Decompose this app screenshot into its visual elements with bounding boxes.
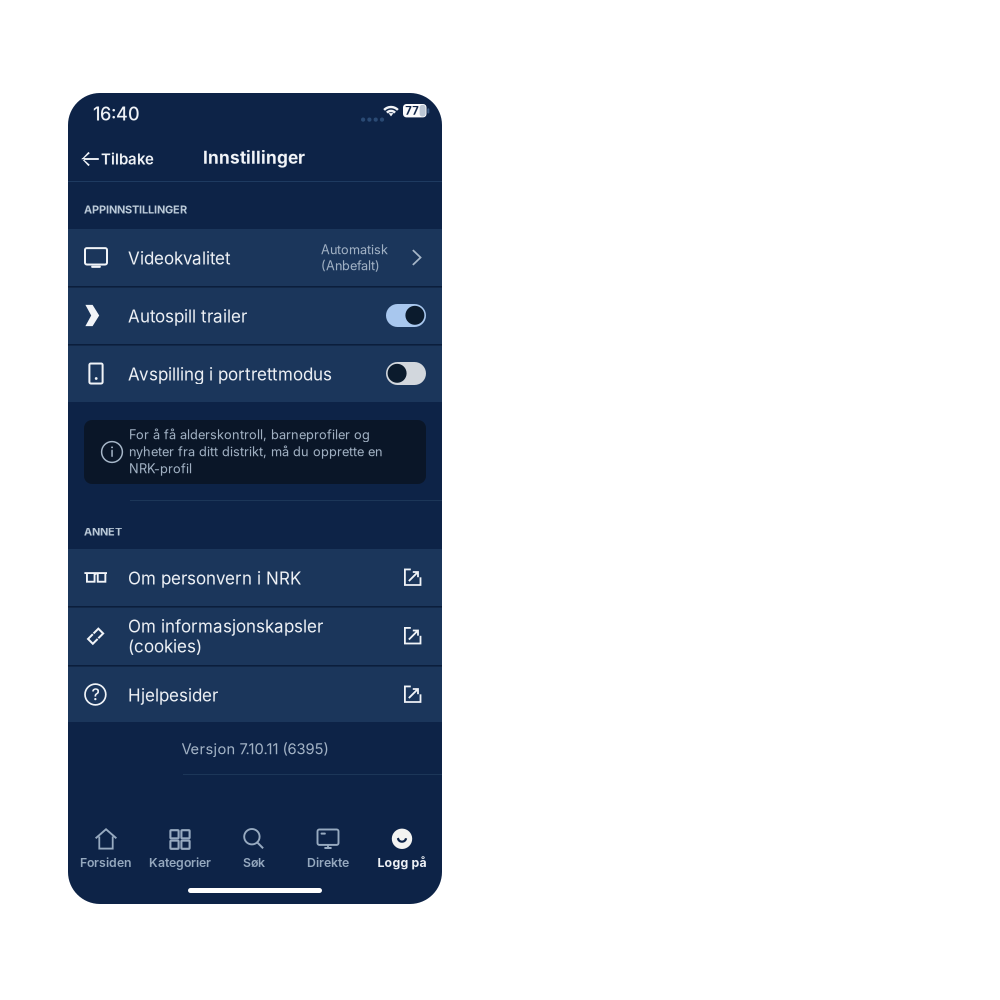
- button[interactable]: Søk: [217, 820, 291, 872]
- staticText: Direkte: [307, 855, 349, 870]
- staticText: 77: [405, 104, 419, 117]
- staticText: ANNET: [84, 525, 122, 538]
- staticText: Om informasjonskapsler: [128, 616, 323, 636]
- staticText: Logg på: [377, 855, 426, 870]
- staticText: Avspilling i portrettmodus: [128, 364, 332, 384]
- staticText: Versjon 7.10.11 (6395): [181, 740, 328, 758]
- staticText: Forsiden: [80, 855, 132, 870]
- staticText: Automatisk: [321, 242, 388, 257]
- staticText: Videokvalitet: [128, 248, 231, 268]
- staticText: ?: [91, 685, 99, 704]
- staticText: 16:40: [93, 103, 140, 125]
- button[interactable]: ?: [68, 666, 442, 723]
- staticText: Innstillinger: [203, 147, 305, 168]
- button[interactable]: Autospill trailer: [68, 287, 442, 344]
- staticText: Kategorier: [149, 855, 211, 870]
- staticText: Hjelpesider: [128, 685, 218, 705]
- staticText: For å få alderskontroll, barneprofiler o…: [129, 427, 370, 442]
- button[interactable]: Kategorier: [143, 820, 217, 872]
- button[interactable]: Videokvalitet: [68, 229, 442, 286]
- staticText: APPINNSTILLINGER: [84, 203, 187, 216]
- staticText: NRK-profil: [129, 461, 192, 476]
- button[interactable]: Logg på: [365, 820, 439, 872]
- button[interactable]: Tilbake: [76, 137, 202, 181]
- button[interactable]: Avspilling i portrettmodus: [68, 345, 442, 402]
- staticText: (cookies): [128, 636, 202, 656]
- button[interactable]: Forsiden: [69, 820, 143, 872]
- staticText: Om personvern i NRK: [128, 568, 301, 588]
- staticText: (Anbefalt): [321, 258, 380, 273]
- button[interactable]: Om informasjonskapsler: [68, 607, 442, 665]
- staticText: Tilbake: [101, 150, 154, 168]
- staticText: Autospill trailer: [128, 306, 247, 326]
- button[interactable]: Direkte: [291, 820, 365, 872]
- button[interactable]: Om personvern i NRK: [68, 549, 442, 606]
- staticText: Søk: [243, 855, 265, 870]
- staticText: nyheter fra ditt distrikt, må du opprett…: [129, 444, 383, 459]
